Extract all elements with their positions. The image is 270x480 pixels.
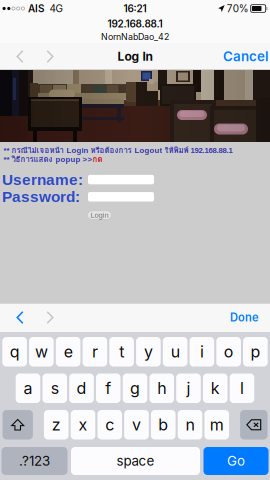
staticText: y xyxy=(144,342,153,361)
button[interactable]: k xyxy=(203,373,228,403)
button[interactable]: j xyxy=(176,373,201,403)
button[interactable]: a xyxy=(16,373,40,403)
staticText: t xyxy=(119,342,124,361)
staticText: e xyxy=(64,342,73,361)
button[interactable]: p xyxy=(243,337,268,366)
button[interactable]: o xyxy=(216,337,241,366)
button[interactable]: h xyxy=(149,373,174,403)
button[interactable]: Next field xyxy=(35,303,65,332)
staticText: h xyxy=(157,379,166,398)
button[interactable]: s xyxy=(42,373,67,403)
button[interactable]: y xyxy=(136,337,161,366)
button[interactable]: e xyxy=(56,337,80,366)
staticText: i xyxy=(200,342,204,361)
staticText: u xyxy=(171,342,180,361)
staticText: q xyxy=(10,342,20,361)
button[interactable]: u xyxy=(163,337,187,366)
staticText: ** กรณีไม่เจอหน้า Login หรือต้องการ Logo… xyxy=(3,144,232,156)
staticText: d xyxy=(76,379,86,398)
button[interactable]: Delete xyxy=(240,410,267,439)
button[interactable]: z xyxy=(44,410,69,439)
staticText: f xyxy=(105,379,111,398)
button[interactable]: m xyxy=(204,410,229,439)
staticText: AIS xyxy=(28,2,45,15)
staticText: Login xyxy=(90,211,108,219)
staticText: 4G xyxy=(49,2,62,15)
button[interactable]: Done xyxy=(224,303,265,332)
button[interactable]: f xyxy=(96,373,121,403)
staticText: n xyxy=(185,415,194,434)
button[interactable]: Login xyxy=(87,211,111,219)
staticText: NornNabDao_42 xyxy=(101,31,169,42)
staticText: c xyxy=(105,415,114,434)
button[interactable]: space xyxy=(71,447,200,475)
button[interactable]: b xyxy=(151,410,176,439)
staticText: Username: xyxy=(2,171,83,188)
staticText: v xyxy=(132,415,141,434)
staticText: Log In xyxy=(117,49,152,64)
staticText: p xyxy=(250,342,260,361)
staticText: Password: xyxy=(2,188,80,205)
button[interactable]: x xyxy=(71,410,95,439)
staticText: 70% xyxy=(227,2,249,15)
staticText: l xyxy=(240,379,244,398)
button[interactable]: n xyxy=(178,410,202,439)
button[interactable]: r xyxy=(83,337,107,366)
staticText: o xyxy=(224,342,234,361)
button[interactable]: w xyxy=(29,337,54,366)
button[interactable]: Back xyxy=(5,43,35,70)
staticText: b xyxy=(158,415,168,434)
staticText: a xyxy=(23,379,32,398)
staticText: 192.168.88.1 xyxy=(107,18,162,30)
button[interactable]: g xyxy=(123,373,147,403)
staticText: space xyxy=(116,453,154,469)
button[interactable]: d xyxy=(69,373,94,403)
staticText: ** วิธีการแสดง popup >> xyxy=(3,153,92,165)
staticText: m xyxy=(210,415,224,434)
staticText: r xyxy=(92,342,98,361)
button[interactable]: i xyxy=(190,337,214,366)
staticText: x xyxy=(78,415,87,434)
staticText: s xyxy=(51,379,59,398)
button[interactable]: Cancel xyxy=(217,43,268,70)
button[interactable]: Go xyxy=(203,447,268,475)
staticText: Cancel xyxy=(223,48,268,64)
staticText: g xyxy=(130,379,140,398)
staticText: j xyxy=(186,379,190,398)
staticText: k xyxy=(211,379,220,398)
button[interactable]: v xyxy=(124,410,149,439)
button[interactable]: .?123 xyxy=(1,447,67,475)
button[interactable]: Previous field xyxy=(5,303,35,332)
button[interactable]: Shift xyxy=(2,410,33,439)
staticText: Done xyxy=(230,311,259,324)
button[interactable]: t xyxy=(109,337,134,366)
staticText: z xyxy=(52,415,61,434)
staticText: 16:21 xyxy=(123,2,146,15)
staticText: .?123 xyxy=(19,453,50,469)
staticText: w xyxy=(35,342,48,361)
button[interactable]: c xyxy=(97,410,122,439)
button[interactable]: Forward xyxy=(35,43,65,70)
button[interactable]: l xyxy=(230,373,254,403)
staticText: กด xyxy=(92,153,102,165)
button[interactable]: q xyxy=(2,337,27,366)
staticText: Go xyxy=(227,453,245,469)
